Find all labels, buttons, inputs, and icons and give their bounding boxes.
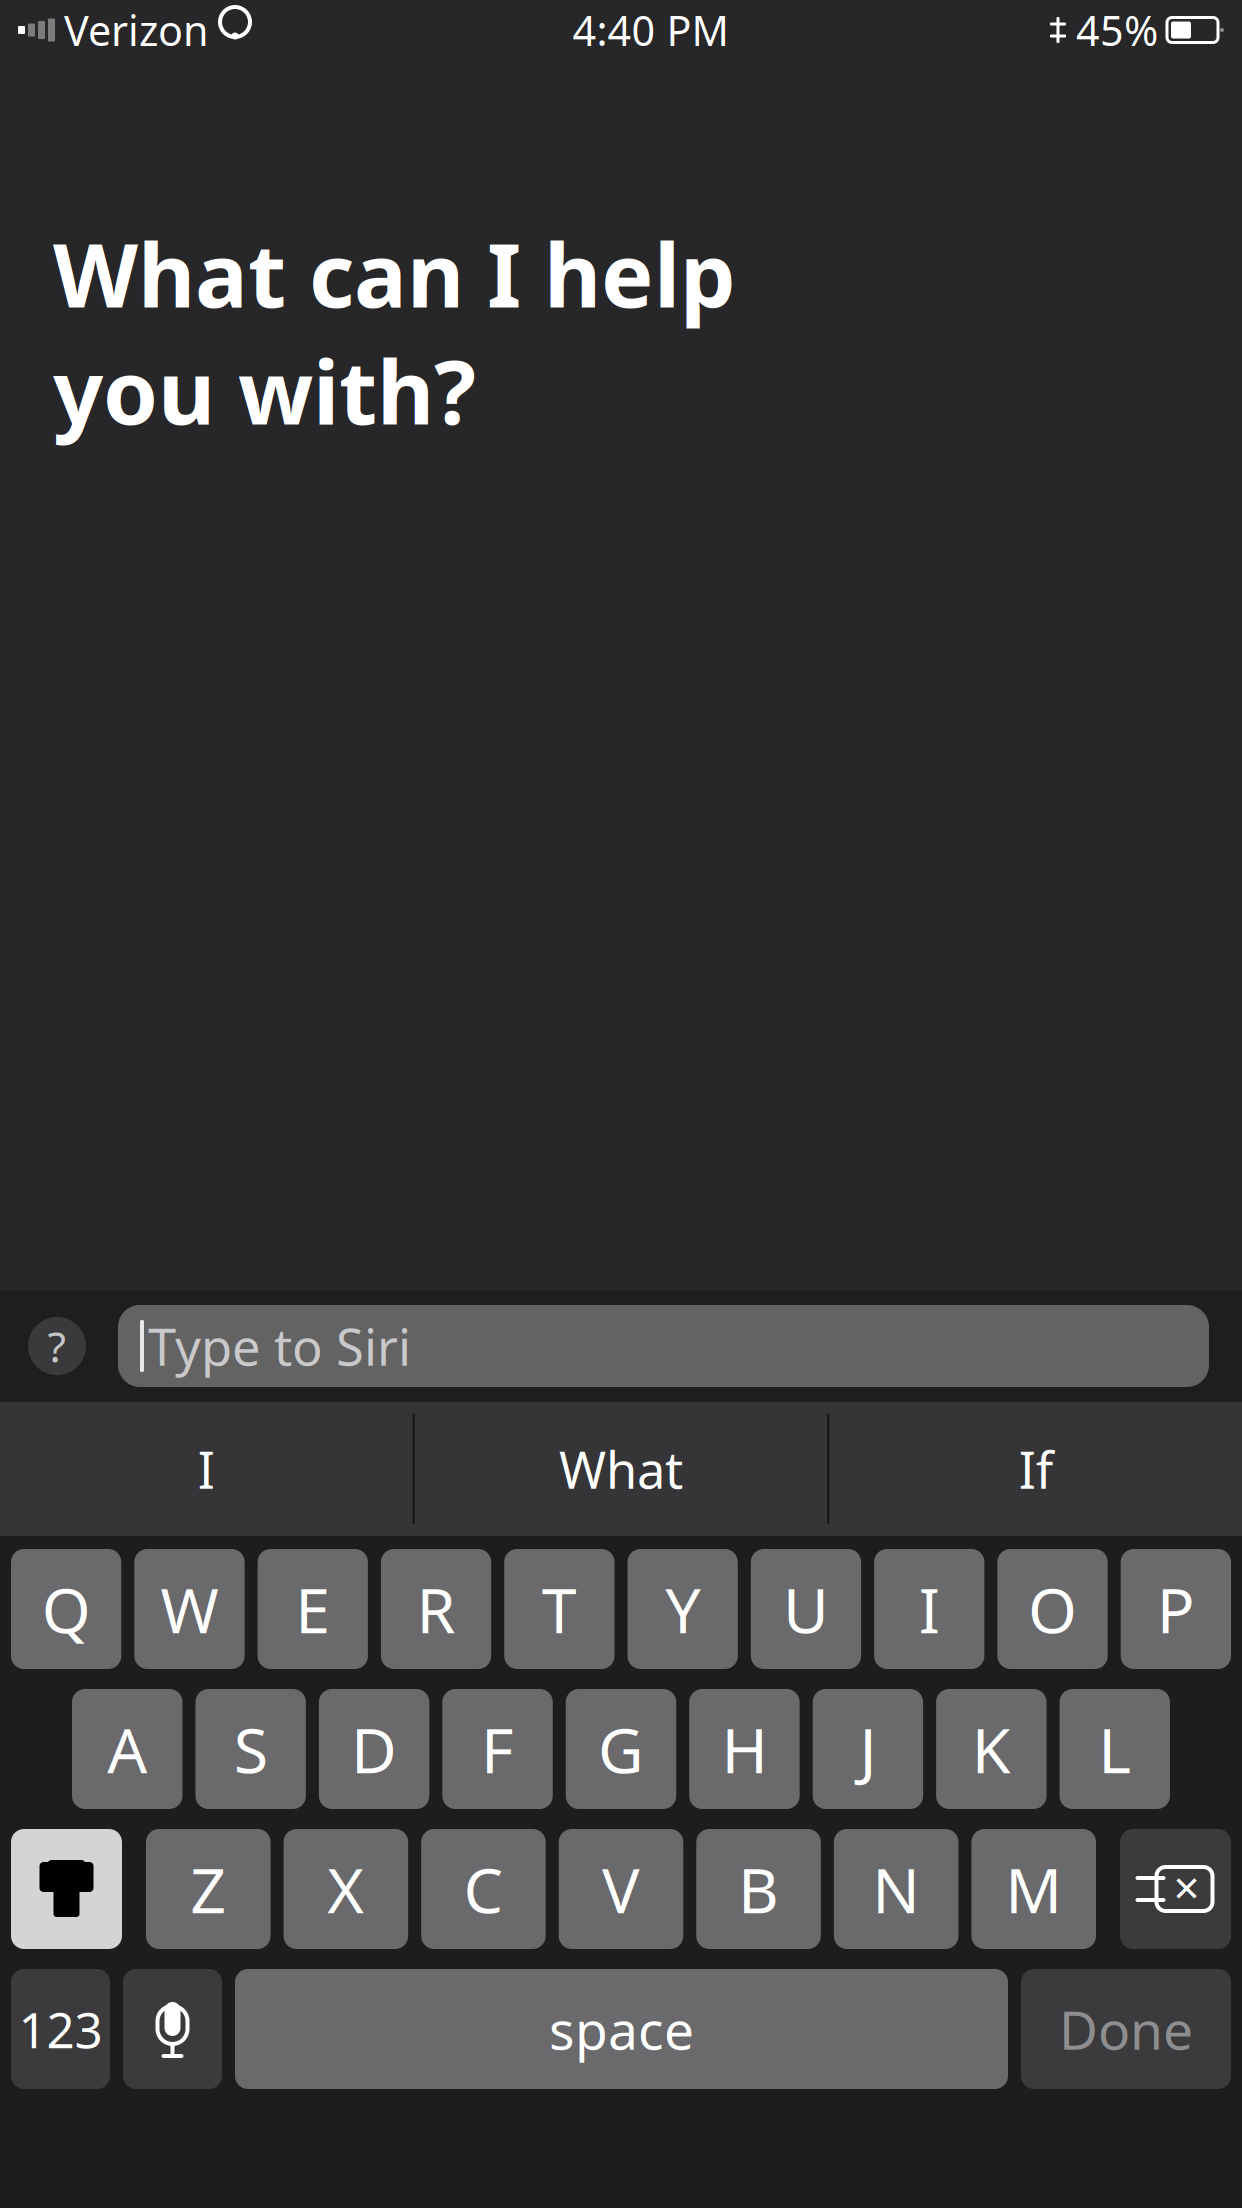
button[interactable]: Z (146, 1829, 271, 1949)
staticText: What (559, 1435, 683, 1503)
staticText: W (160, 1567, 218, 1651)
staticText: M (1005, 1847, 1062, 1931)
button[interactable]: If (829, 1402, 1242, 1536)
staticText: T (542, 1567, 577, 1651)
button[interactable]: R (381, 1549, 491, 1669)
staticText: ✕ (1172, 1869, 1201, 1909)
staticText: N (872, 1847, 920, 1931)
staticText: U (783, 1567, 829, 1651)
button[interactable]: F (442, 1689, 553, 1809)
staticText: C (463, 1847, 503, 1931)
staticText: R (416, 1567, 455, 1651)
button[interactable]: K (936, 1689, 1046, 1809)
staticText: P (1157, 1567, 1195, 1651)
button[interactable]: Siri help (28, 1317, 86, 1375)
button[interactable]: N (834, 1829, 958, 1949)
button[interactable]: O (997, 1549, 1108, 1669)
staticText: B (738, 1847, 779, 1931)
staticText: D (351, 1707, 397, 1791)
staticText: Y (665, 1567, 700, 1651)
staticText: K (972, 1707, 1011, 1791)
staticText: G (598, 1707, 644, 1791)
button[interactable]: X (284, 1829, 408, 1949)
button[interactable]: Delete (1120, 1829, 1231, 1949)
staticText: Z (190, 1847, 226, 1931)
button[interactable]: D (319, 1689, 429, 1809)
staticText: F (481, 1707, 514, 1791)
staticText: Verizon (64, 3, 209, 57)
button[interactable]: W (134, 1549, 245, 1669)
button[interactable]: Shift (11, 1829, 122, 1949)
button[interactable]: Done (1021, 1969, 1231, 2089)
button[interactable]: G (566, 1689, 676, 1809)
staticText: Done (1059, 1994, 1193, 2064)
button[interactable]: I (874, 1549, 984, 1669)
button[interactable]: T (504, 1549, 614, 1669)
button[interactable]: E (258, 1549, 368, 1669)
staticText: A (107, 1707, 147, 1791)
staticText: L (1098, 1707, 1131, 1791)
staticText: O (1028, 1567, 1077, 1651)
button[interactable]: space (235, 1969, 1008, 2089)
staticText: Type to Siri (148, 1312, 411, 1380)
staticText: E (295, 1567, 330, 1651)
staticText: S (234, 1707, 268, 1791)
staticText: X (327, 1847, 364, 1931)
staticText: 4:40 PM (572, 3, 728, 57)
button[interactable]: C (421, 1829, 546, 1949)
staticText: I (198, 1435, 215, 1503)
button[interactable]: L (1060, 1689, 1170, 1809)
button[interactable]: B (696, 1829, 821, 1949)
staticText: J (859, 1707, 876, 1791)
button[interactable]: U (751, 1549, 861, 1669)
button[interactable]: Y (627, 1549, 738, 1669)
staticText: space (549, 1994, 694, 2064)
button[interactable]: Dictate (123, 1969, 222, 2089)
button[interactable]: S (195, 1689, 306, 1809)
staticText: H (721, 1707, 767, 1791)
button[interactable]: Q (11, 1549, 121, 1669)
button[interactable]: P (1121, 1549, 1231, 1669)
button[interactable]: V (559, 1829, 683, 1949)
staticText: I (919, 1567, 940, 1651)
staticText: 123 (18, 1996, 102, 2062)
staticText: Q (42, 1567, 91, 1651)
button[interactable]: H (689, 1689, 800, 1809)
staticText: V (602, 1847, 640, 1931)
staticText: ? (47, 1318, 66, 1374)
staticText: If (1019, 1435, 1053, 1503)
button[interactable]: What (415, 1402, 827, 1536)
staticText: 45% (1076, 3, 1158, 57)
button[interactable]: Type to Siri (118, 1305, 1209, 1387)
button[interactable]: 123 (11, 1969, 110, 2089)
button[interactable]: A (72, 1689, 182, 1809)
button[interactable]: I (0, 1402, 413, 1536)
staticText: What can I help you with? (53, 215, 736, 449)
button[interactable]: J (813, 1689, 923, 1809)
button[interactable]: M (971, 1829, 1096, 1949)
